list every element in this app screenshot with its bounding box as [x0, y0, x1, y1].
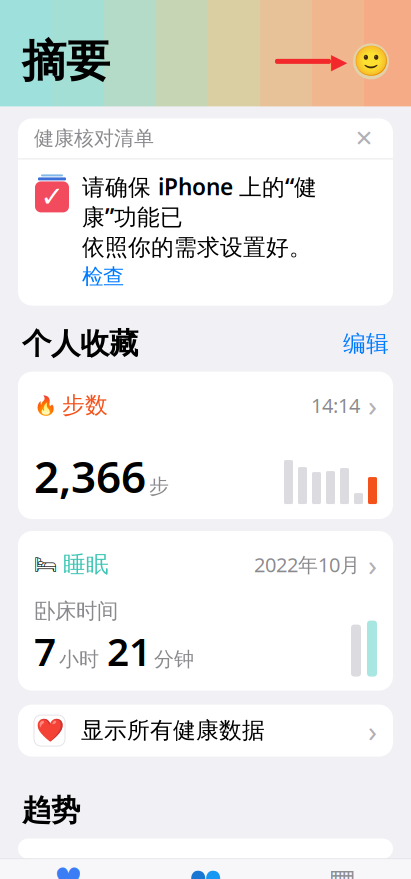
staticText: 🛏 [34, 554, 58, 575]
staticText: › [368, 711, 377, 750]
staticText: 检查 [82, 263, 124, 290]
button[interactable]: 🛏 [18, 531, 393, 691]
button[interactable]: 编辑 [343, 330, 389, 357]
staticText: 👥 [189, 864, 222, 879]
staticText: 趋势 [22, 793, 80, 829]
button[interactable]: ▦ [274, 867, 411, 879]
staticText: 小时 [59, 647, 99, 672]
button[interactable]: 🔥 [18, 372, 393, 519]
staticText: 步 [149, 474, 169, 499]
staticText: 2,366 [34, 447, 146, 505]
staticText: › [368, 386, 377, 425]
button[interactable]: ❤️ [18, 705, 393, 757]
staticText: ✓ [40, 181, 63, 213]
staticText: ✕ [354, 125, 373, 151]
button[interactable]: 关闭 [351, 125, 377, 151]
staticText: 🔥 [34, 394, 57, 416]
staticText: 分钟 [154, 647, 194, 672]
staticText: ▦ [328, 863, 356, 879]
staticText: 14:14 [311, 392, 360, 418]
staticText: ❤️ [35, 718, 63, 743]
staticText: 个人收藏 [22, 326, 138, 362]
staticText: 请确保 iPhone 上的“健康”功能已 [82, 171, 317, 232]
staticText: 健康核对清单 [34, 126, 154, 151]
staticText: 编辑 [343, 330, 389, 357]
staticText: 摘要 [22, 34, 110, 88]
staticText: ▶ [331, 49, 347, 73]
staticText: 步数 [62, 391, 108, 419]
staticText: 睡眠 [63, 551, 109, 578]
button[interactable]: ♥ [0, 867, 137, 879]
staticText: 依照你的需求设置好。 [82, 234, 312, 261]
staticText: 显示所有健康数据 [81, 717, 265, 744]
staticText: › [368, 545, 377, 584]
staticText: 7 [34, 625, 56, 676]
staticText: 21 [107, 625, 151, 676]
button[interactable]: 👥 [137, 867, 274, 879]
staticText: ♥ [54, 861, 83, 879]
button[interactable]: 检查 [82, 263, 124, 290]
staticText: 2022年10月 [254, 551, 360, 578]
staticText: 卧床时间 [34, 598, 118, 624]
staticText: 🙂 [352, 45, 389, 78]
button[interactable]: 个人资料 [353, 43, 389, 79]
